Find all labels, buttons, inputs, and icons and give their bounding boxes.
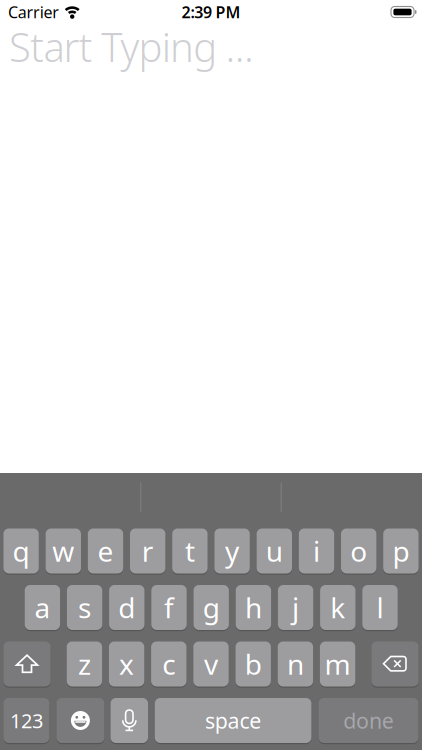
button[interactable]: i (299, 527, 334, 574)
button[interactable]: n (278, 640, 313, 687)
button[interactable]: s (67, 584, 102, 631)
staticText: e (97, 532, 113, 570)
staticText: u (266, 532, 283, 570)
button[interactable]: h (236, 584, 271, 631)
button[interactable]: y (214, 527, 250, 574)
staticText: p (392, 532, 409, 570)
staticText: space (205, 706, 261, 735)
staticText: w (52, 532, 74, 570)
button[interactable]: z (67, 640, 102, 687)
button[interactable]: j (278, 584, 313, 631)
staticText: t (185, 532, 195, 570)
button[interactable]: x (109, 640, 144, 687)
staticText: a (34, 589, 50, 626)
button[interactable]: t (172, 527, 208, 574)
button[interactable]: Emoji (56, 697, 104, 744)
button[interactable]: v (193, 640, 229, 687)
staticText: o (350, 532, 367, 570)
button[interactable]: q (3, 527, 39, 574)
staticText: m (325, 645, 351, 683)
button[interactable]: u (257, 527, 292, 574)
staticText: Start Typing ... (9, 20, 254, 73)
staticText: v (204, 645, 218, 683)
staticText: b (245, 645, 262, 683)
staticText: q (13, 532, 30, 570)
button[interactable]: o (341, 527, 376, 574)
staticText: s (78, 589, 91, 626)
staticText: 2:39 PM (182, 1, 240, 23)
button[interactable]: Delete (371, 640, 419, 687)
button[interactable]: g (193, 584, 229, 631)
button[interactable]: Shift (3, 640, 51, 687)
button[interactable]: Dictate (111, 697, 148, 744)
button[interactable]: l (362, 584, 398, 631)
staticText: f (164, 589, 174, 626)
staticText: h (245, 589, 262, 626)
button[interactable]: space (155, 697, 311, 744)
staticText: 123 (10, 707, 43, 734)
button[interactable]: b (235, 640, 271, 687)
staticText: r (142, 532, 154, 570)
staticText: x (119, 645, 134, 683)
staticText: done (343, 706, 394, 735)
button[interactable]: a (25, 584, 60, 631)
staticText: d (118, 589, 135, 626)
button[interactable]: k (320, 584, 355, 631)
button[interactable]: m (320, 640, 355, 687)
button[interactable]: d (109, 584, 144, 631)
staticText: n (287, 645, 304, 683)
staticText: c (162, 645, 175, 683)
button[interactable]: f (151, 584, 187, 631)
button[interactable]: e (88, 527, 123, 574)
button[interactable]: c (151, 640, 186, 687)
staticText: l (376, 589, 383, 626)
staticText: i (313, 532, 320, 570)
button[interactable]: done (318, 697, 418, 744)
staticText: y (225, 532, 239, 570)
button[interactable]: 123 (3, 697, 49, 744)
button[interactable]: r (130, 527, 165, 574)
staticText: g (203, 589, 220, 626)
button[interactable]: w (46, 527, 81, 574)
staticText: z (78, 645, 91, 683)
button[interactable]: p (383, 527, 419, 574)
staticText: Carrier (8, 1, 59, 23)
staticText: j (292, 589, 299, 626)
staticText: k (330, 589, 345, 626)
